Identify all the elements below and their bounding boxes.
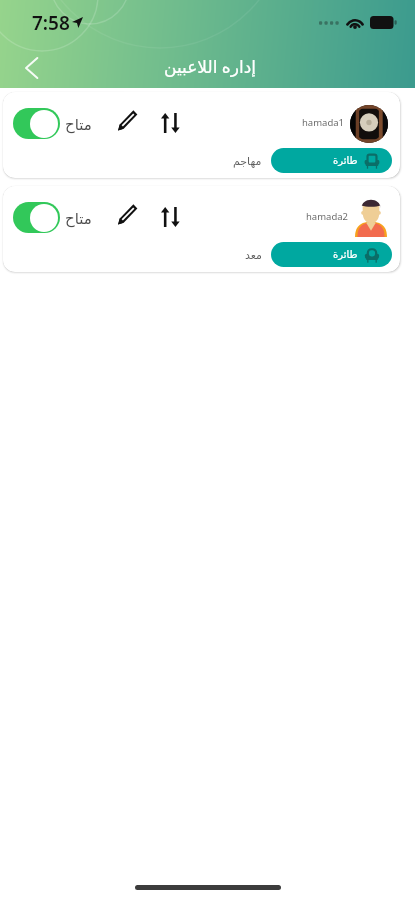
button[interactable]: Sort — [156, 109, 184, 137]
button[interactable]: Toggle availability — [13, 108, 60, 139]
staticText: hamada2 — [306, 210, 349, 223]
staticText: طائرة — [333, 155, 358, 167]
button[interactable]: Sort — [156, 203, 184, 231]
staticText: hamada1 — [302, 116, 345, 129]
staticText: 7:58 — [32, 10, 70, 36]
staticText: متاح — [65, 210, 92, 227]
staticText: مهاجم — [233, 155, 262, 168]
button[interactable]: Toggle availability — [13, 202, 60, 233]
staticText: طائرة — [333, 249, 358, 261]
button[interactable]: Toggle availability — [3, 92, 400, 178]
staticText: متاح — [65, 116, 92, 133]
staticText: إداره اللاعبين — [164, 55, 256, 78]
staticText: معد — [245, 249, 262, 262]
button[interactable]: Toggle availability — [3, 186, 400, 272]
button[interactable]: طائرة — [271, 148, 392, 173]
button[interactable]: Back — [14, 51, 48, 85]
button[interactable]: Edit — [113, 200, 141, 228]
button[interactable]: طائرة — [271, 242, 392, 267]
button[interactable]: Edit — [113, 106, 141, 134]
